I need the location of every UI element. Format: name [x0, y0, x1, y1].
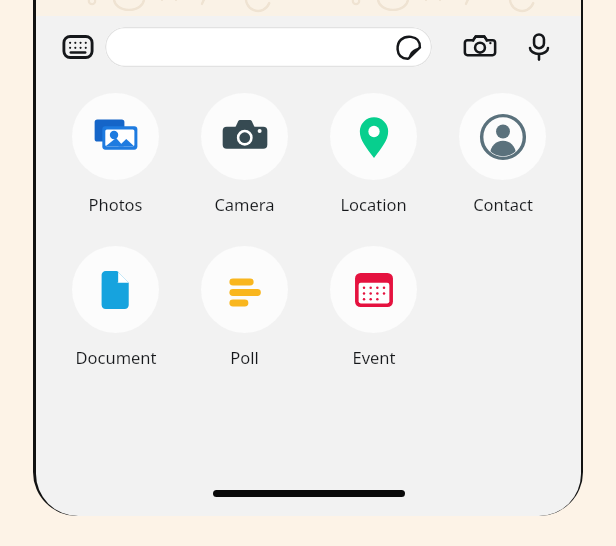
button[interactable]: Stickers — [105, 27, 432, 67]
button[interactable]: Event — [309, 246, 438, 368]
button[interactable]: Location — [309, 93, 438, 215]
button[interactable]: Photos — [51, 93, 180, 215]
staticText: Camera — [214, 193, 275, 215]
staticText: Poll — [230, 346, 259, 368]
staticText: Location — [340, 193, 407, 215]
button[interactable]: Poll — [180, 246, 309, 368]
button[interactable]: Keyboard — [56, 25, 100, 69]
button[interactable]: Voice message — [518, 26, 560, 68]
staticText: Document — [75, 346, 157, 368]
button[interactable]: Stickers — [393, 32, 423, 62]
staticText: Event — [352, 346, 396, 368]
staticText: Photos — [88, 193, 143, 215]
button[interactable]: Contact — [438, 93, 567, 215]
button[interactable]: Camera — [458, 25, 502, 69]
button[interactable]: Document — [51, 246, 180, 368]
staticText: Contact — [473, 193, 533, 215]
button[interactable]: Camera — [180, 93, 309, 215]
